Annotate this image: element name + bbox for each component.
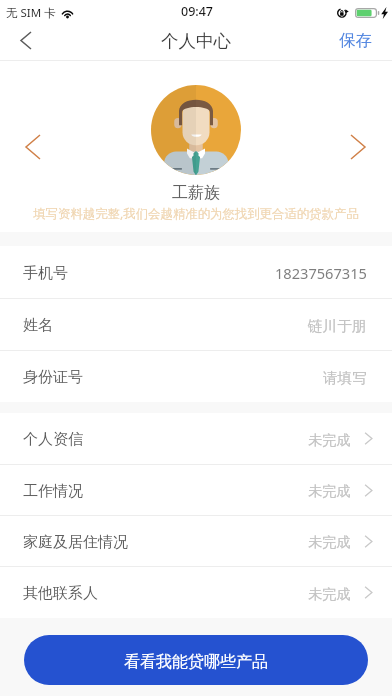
staticText: 身份证号 xyxy=(23,368,83,387)
staticText: 未完成 xyxy=(308,482,351,500)
staticText: 无 SIM 卡 xyxy=(6,5,56,21)
button[interactable]: 身份证号 xyxy=(0,351,392,402)
staticText: 个人中心 xyxy=(161,30,231,52)
button[interactable]: 保存 xyxy=(321,25,392,60)
staticText: 09:47 xyxy=(181,3,214,20)
staticText: 未完成 xyxy=(308,585,351,603)
button[interactable]: 个人资信 xyxy=(0,413,392,464)
staticText: 未完成 xyxy=(308,533,351,551)
staticText: 其他联系人 xyxy=(23,584,98,603)
button[interactable]: Previous profile xyxy=(19,133,47,161)
button[interactable]: 其他联系人 xyxy=(0,567,392,618)
button[interactable]: 工作情况 xyxy=(0,465,392,515)
button[interactable]: Next profile xyxy=(344,133,372,161)
button[interactable]: Back xyxy=(0,25,52,60)
button[interactable]: 姓名 xyxy=(0,299,392,350)
staticText: 保存 xyxy=(339,30,372,51)
staticText: 家庭及居住情况 xyxy=(23,533,128,552)
staticText: 工薪族 xyxy=(172,183,220,203)
staticText: 个人资信 xyxy=(23,430,83,449)
staticText: 18237567315 xyxy=(275,263,367,283)
staticText: 看看我能贷哪些产品 xyxy=(124,652,268,672)
staticText: 姓名 xyxy=(23,316,53,335)
staticText: 填写资料越完整,我们会越精准的为您找到更合适的贷款产品 xyxy=(33,205,359,222)
staticText: 手机号 xyxy=(23,264,68,283)
staticText: 请填写 xyxy=(323,369,367,387)
staticText: 工作情况 xyxy=(23,482,83,501)
button[interactable]: 家庭及居住情况 xyxy=(0,516,392,566)
staticText: 未完成 xyxy=(308,431,351,449)
staticText: 链川于朋 xyxy=(308,317,367,335)
button[interactable]: 看看我能贷哪些产品 xyxy=(24,635,368,685)
button[interactable]: 手机号 xyxy=(0,246,392,298)
